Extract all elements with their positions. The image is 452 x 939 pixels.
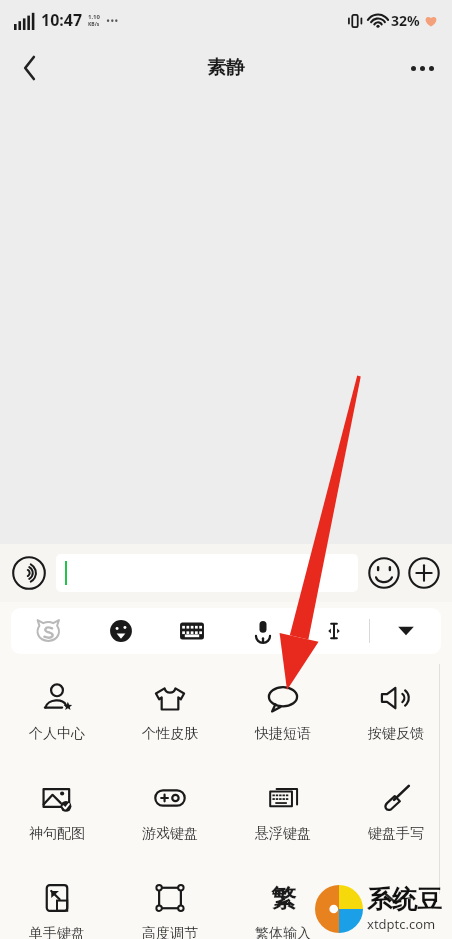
staticText: 繁体输入 [255,925,311,939]
staticText: 神句配图 [29,825,85,843]
button[interactable]: Move cursor [298,608,369,654]
button[interactable]: 单手键盘 [0,860,113,939]
staticText: 键盘手写 [368,825,424,843]
button[interactable]: 高度调节 [113,860,226,939]
button[interactable]: Emoji [85,608,156,654]
button[interactable]: Back [6,44,54,92]
button[interactable]: 神句配图 [0,760,113,860]
button[interactable]: Sogou input [11,608,85,654]
staticText: 繁 [271,883,296,914]
staticText: xtdptc.com [367,915,436,933]
button[interactable]: 按键反馈 [339,660,452,760]
button[interactable]: 个性皮肤 [113,660,226,760]
staticText: 系统豆 [367,884,442,915]
staticText: 游戏键盘 [142,825,198,843]
button[interactable] [56,554,358,592]
button[interactable]: 游戏键盘 [113,760,226,860]
staticText: 32% [391,11,420,30]
staticText: 个人中心 [29,725,85,743]
button[interactable]: More options [398,44,446,92]
staticText: 单手键盘 [29,925,85,939]
button[interactable]: Voice [227,608,298,654]
button[interactable]: Collapse keyboard [370,608,441,654]
button[interactable]: 键盘手写 [339,760,452,860]
staticText: 1.10 [88,13,100,21]
button[interactable]: 快捷短语 [226,660,339,760]
staticText: 按键反馈 [368,725,424,743]
button[interactable]: 悬浮键盘 [226,760,339,860]
staticText: 快捷短语 [255,725,311,743]
staticText: 10:47 [41,9,83,31]
button[interactable]: 繁 [226,860,339,939]
staticText: 高度调节 [142,925,198,939]
staticText: 个性皮肤 [142,725,198,743]
staticText: KB/s [88,21,100,28]
button[interactable]: Keyboard [156,608,227,654]
staticText: ••• [106,13,119,28]
button[interactable]: Voice input [12,556,46,590]
button[interactable] [339,860,452,939]
button[interactable]: Emoji [368,557,400,589]
button[interactable]: More [408,557,440,589]
button[interactable]: 个人中心 [0,660,113,760]
staticText: 悬浮键盘 [255,825,311,843]
staticText: 素静 [207,56,245,80]
